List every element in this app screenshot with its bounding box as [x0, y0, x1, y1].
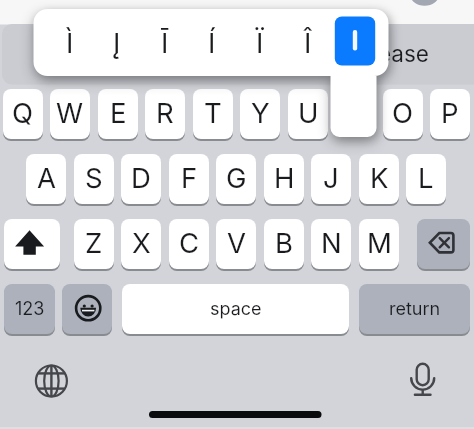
button[interactable]: V [216, 219, 256, 269]
staticText: Ì [66, 26, 74, 59]
staticText: 123 [15, 298, 45, 320]
staticText: W [56, 96, 84, 129]
button[interactable]: F [169, 154, 209, 204]
button[interactable]: 123 [4, 284, 55, 334]
staticText: T [204, 96, 222, 129]
staticText: Ï [256, 26, 264, 59]
staticText: P [441, 96, 459, 129]
staticText: Y [251, 96, 270, 129]
staticText: H [274, 161, 295, 194]
staticText: A [37, 161, 56, 194]
button[interactable]: Ī [141, 22, 189, 62]
staticText: space [210, 298, 262, 320]
button[interactable]: Ì [46, 22, 94, 62]
button[interactable]: O [383, 89, 423, 139]
button[interactable]: N [311, 219, 351, 269]
button[interactable]: D [121, 154, 161, 204]
button[interactable]: M [359, 219, 399, 269]
button[interactable]: H [264, 154, 304, 204]
button[interactable]: W [50, 89, 90, 139]
staticText: Q [12, 96, 34, 129]
button[interactable]: E [98, 89, 138, 139]
staticText: Í [208, 26, 216, 59]
staticText: D [131, 161, 151, 194]
staticText: N [321, 226, 342, 259]
button[interactable] [4, 219, 60, 269]
staticText: Į [113, 26, 121, 59]
button[interactable]: Q [3, 89, 43, 139]
staticText: F [181, 161, 198, 194]
button[interactable]: L [406, 154, 446, 204]
staticText: V [227, 226, 246, 259]
button[interactable]: K [359, 154, 399, 204]
button[interactable]: S [74, 154, 114, 204]
staticText: J [323, 161, 339, 194]
button[interactable]: G [216, 154, 256, 204]
staticText: Z [85, 226, 103, 259]
button[interactable]: X [121, 219, 161, 269]
staticText: Ī [161, 26, 169, 59]
button[interactable]: Í [188, 22, 236, 62]
button[interactable]: U [288, 89, 328, 139]
button[interactable]: T [193, 89, 233, 139]
staticText: M [367, 226, 392, 259]
button[interactable]: J [311, 154, 351, 204]
staticText: L [418, 161, 434, 194]
staticText: Î [304, 26, 312, 59]
staticText: U [298, 96, 319, 129]
button[interactable] [62, 284, 112, 334]
staticText: E [110, 96, 127, 129]
button[interactable] [417, 219, 470, 269]
button[interactable]: R [145, 89, 185, 139]
button[interactable]: Ï [236, 22, 284, 62]
button[interactable]: Y [240, 89, 280, 139]
button[interactable]: space [122, 284, 349, 334]
staticText: return [389, 298, 441, 320]
button[interactable]: return [359, 284, 470, 334]
staticText: B [275, 226, 293, 259]
staticText: X [132, 226, 151, 259]
button[interactable]: Î [284, 22, 332, 62]
staticText: C [179, 226, 200, 259]
button[interactable]: Į [93, 22, 141, 62]
staticText: S [85, 161, 103, 194]
button[interactable]: B [264, 219, 304, 269]
staticText: O [392, 96, 414, 129]
button[interactable]: A [26, 154, 66, 204]
button[interactable]: P [430, 89, 470, 139]
staticText: R [156, 96, 174, 129]
button[interactable]: Z [74, 219, 114, 269]
button[interactable]: C [169, 219, 209, 269]
staticText: K [370, 161, 389, 194]
staticText: ease [378, 40, 429, 67]
staticText: G [226, 161, 247, 194]
